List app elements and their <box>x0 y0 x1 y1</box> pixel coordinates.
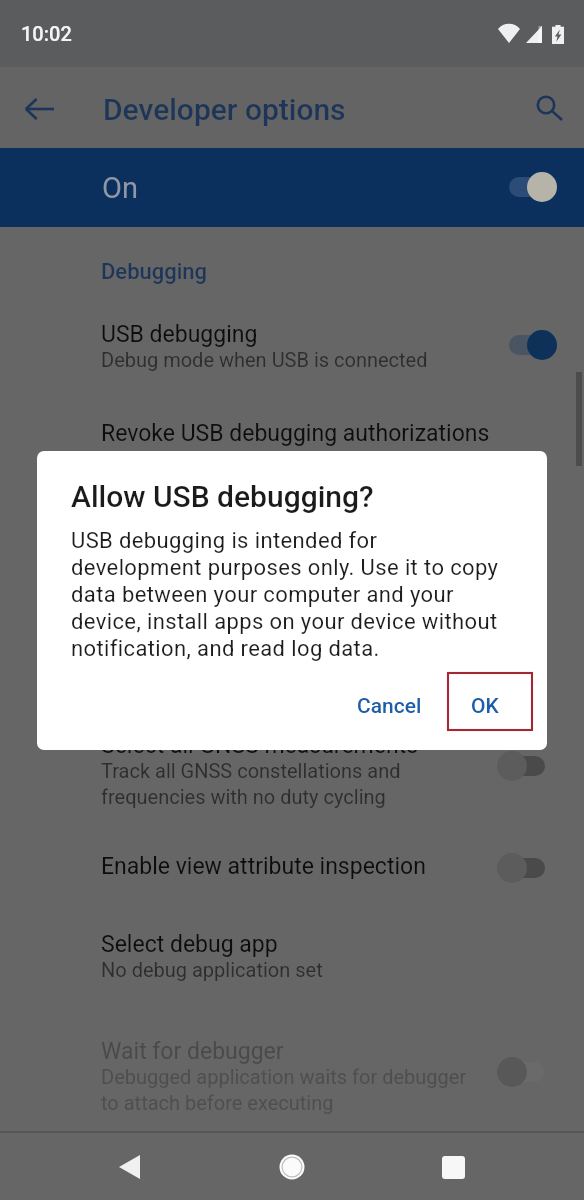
staticText: Debug mode when USB is connected <box>101 348 428 371</box>
button[interactable]: Revoke USB debugging authorizations <box>0 420 584 498</box>
staticText: USB debugging <box>101 321 258 348</box>
button[interactable]: Recent apps <box>421 1135 485 1199</box>
button[interactable]: Select all GNSS measurements <box>0 732 584 828</box>
button[interactable]: Wait for debugger <box>0 1038 584 1138</box>
staticText: Cancel <box>357 694 422 719</box>
staticText: No debug application set <box>101 958 323 981</box>
staticText: Allow USB debugging? <box>71 479 374 514</box>
staticText: Debugged application waits for debugger … <box>101 1065 467 1114</box>
button[interactable]: USB debugging <box>0 321 584 420</box>
button[interactable]: Cancel <box>326 678 453 735</box>
button[interactable]: Navigate up <box>12 78 68 134</box>
staticText: Enable view attribute inspection <box>101 853 426 880</box>
staticText: OK <box>471 694 499 719</box>
button[interactable]: OK <box>443 678 527 735</box>
staticText: Revoke USB debugging authorizations <box>101 420 490 447</box>
button[interactable]: Select debug app <box>0 931 584 1011</box>
staticText: Select all GNSS measurements <box>101 732 419 759</box>
button[interactable]: On <box>0 148 584 227</box>
staticText: USB debugging is intended for developmen… <box>71 528 499 662</box>
button[interactable]: Home <box>260 1135 324 1199</box>
staticText: Track all GNSS constellations and freque… <box>101 759 401 808</box>
button[interactable]: Enable view attribute inspection <box>0 853 584 923</box>
staticText: Wait for debugger <box>101 1038 284 1065</box>
staticText: Debugging <box>101 259 208 285</box>
button[interactable]: Search <box>519 70 575 126</box>
staticText: Select debug app <box>101 931 278 958</box>
staticText: Developer options <box>103 92 346 127</box>
staticText: On <box>102 171 138 205</box>
staticText: 10:02 <box>21 22 72 45</box>
button[interactable]: Back <box>97 1135 161 1199</box>
